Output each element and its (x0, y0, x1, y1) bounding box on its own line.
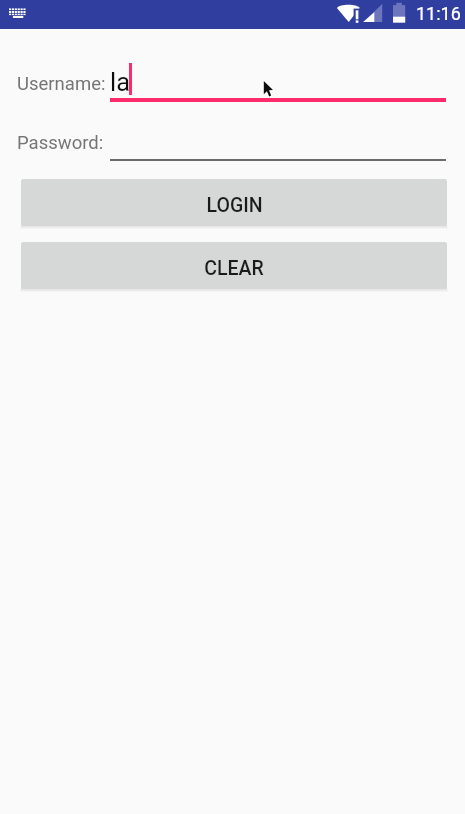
button[interactable]: Username input field (110, 63, 446, 101)
button[interactable]: LOGIN (21, 179, 447, 226)
staticText: LOGIN (206, 194, 263, 217)
button[interactable]: CLEAR (21, 242, 447, 289)
staticText: 11:16 (416, 3, 461, 24)
other: System status icons (0, 0, 465, 29)
staticText: CLEAR (204, 257, 264, 280)
staticText: Password: (17, 132, 104, 154)
staticText: Username: (17, 73, 106, 95)
staticText: la (110, 67, 131, 97)
button[interactable]: Password input field (110, 128, 446, 160)
